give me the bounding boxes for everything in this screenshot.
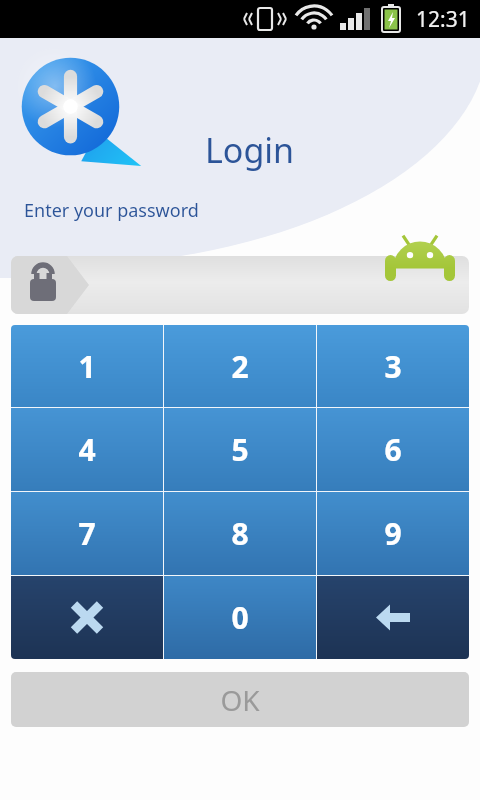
staticText: 12:31 xyxy=(416,5,470,34)
staticText: OK xyxy=(220,681,260,719)
staticText: Enter your password xyxy=(24,198,199,223)
button[interactable]: 4 xyxy=(11,408,163,491)
staticText: Login xyxy=(205,127,295,173)
button[interactable]: 0 xyxy=(164,576,316,659)
button[interactable]: 9 xyxy=(317,492,469,575)
staticText: 5 xyxy=(231,429,249,470)
button[interactable]: 5 xyxy=(164,408,316,491)
staticText: 3 xyxy=(384,346,402,387)
staticText: 9 xyxy=(384,513,402,554)
button[interactable] xyxy=(11,256,469,314)
button[interactable]: 7 xyxy=(11,492,163,575)
button[interactable]: 2 xyxy=(164,325,316,407)
button[interactable]: OK xyxy=(11,672,469,727)
button[interactable]: 8 xyxy=(164,492,316,575)
staticText: 1 xyxy=(78,346,96,387)
staticText: 0 xyxy=(231,597,249,638)
staticText: 7 xyxy=(78,513,96,554)
button[interactable]: 3 xyxy=(317,325,469,407)
staticText: 8 xyxy=(231,513,249,554)
button[interactable]: Backspace xyxy=(317,576,469,659)
staticText: 4 xyxy=(78,429,96,470)
button[interactable]: 1 xyxy=(11,325,163,407)
button[interactable]: 6 xyxy=(317,408,469,491)
button[interactable]: Clear xyxy=(11,576,163,659)
staticText: 6 xyxy=(384,429,402,470)
staticText: 2 xyxy=(231,346,249,387)
